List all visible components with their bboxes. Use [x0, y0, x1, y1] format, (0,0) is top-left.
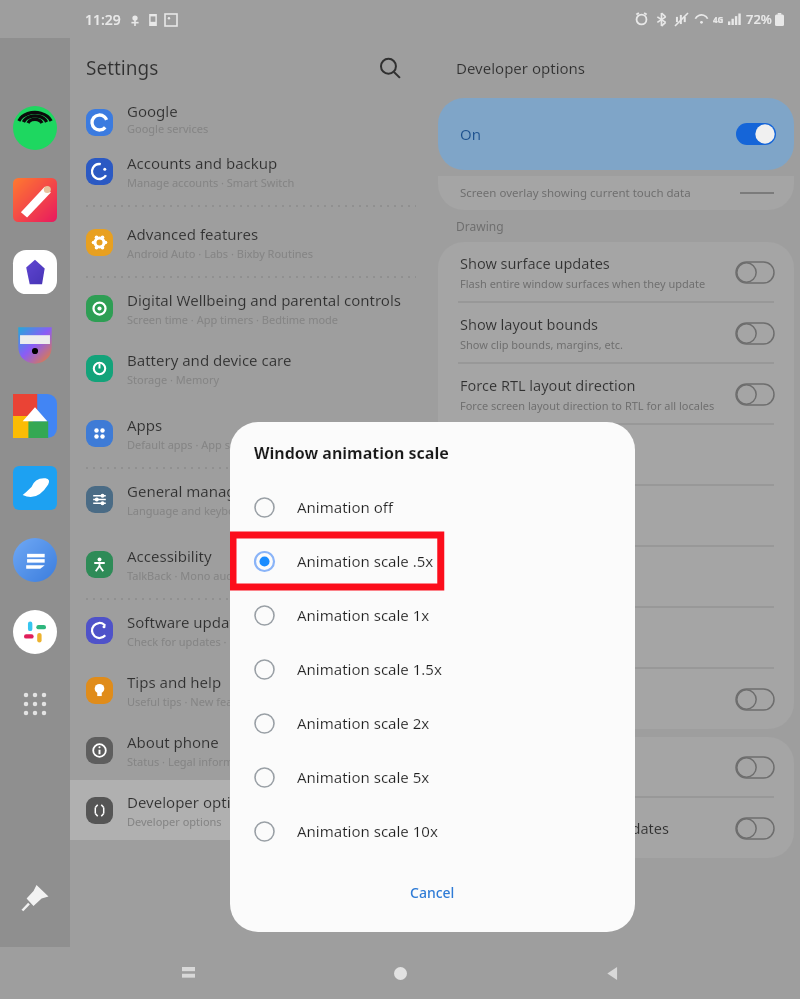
staticText: Window animation scale	[254, 442, 449, 464]
staticText: Show layout bounds	[460, 314, 599, 334]
button[interactable]: Animation scale 2x	[230, 696, 635, 750]
button[interactable]: On	[438, 98, 794, 170]
button[interactable]: Google Home	[7, 388, 63, 444]
button[interactable]: Animation scale 10x	[230, 804, 635, 858]
button[interactable]	[438, 608, 794, 668]
button[interactable]: Advanced features	[70, 207, 432, 277]
button[interactable]: App	[7, 244, 63, 300]
staticText: Force RTL layout direction	[460, 375, 636, 395]
staticText: Show hardware layers updates	[460, 818, 669, 838]
button[interactable]: General manager	[70, 469, 432, 529]
staticText: Language and keyboard	[127, 503, 253, 518]
button[interactable]: Apps	[7, 676, 63, 732]
button[interactable]: Home	[376, 949, 424, 997]
staticText: Settings	[86, 55, 159, 81]
staticText: Advanced features	[127, 224, 259, 244]
staticText: Animation scale 1.5x	[297, 659, 442, 679]
button[interactable]: Apps	[70, 398, 432, 468]
staticText: Manage accounts · Smart Switch	[127, 175, 295, 190]
staticText: Android Auto · Labs · Bixby Routines	[127, 246, 313, 261]
button[interactable]: Spotify	[7, 100, 63, 156]
staticText: 11:29	[85, 10, 121, 29]
staticText: Developer options	[127, 792, 257, 812]
button[interactable]: Digital Wellbeing and parental controls	[70, 278, 432, 338]
staticText: Useful tips · New featu	[127, 694, 244, 709]
button[interactable]: Show hardware layers updates	[438, 798, 794, 858]
button[interactable]: About phone	[70, 720, 432, 780]
staticText: Flash entire window surfaces when they u…	[460, 276, 706, 291]
staticText: Animation off	[297, 497, 394, 517]
staticText: Storage · Memory	[127, 372, 220, 387]
button[interactable]: Notes	[7, 172, 63, 228]
button[interactable]: Show surface updates	[438, 242, 794, 302]
staticText: Battery and device care	[127, 350, 292, 370]
button[interactable]: Animation off	[230, 480, 635, 534]
staticText: Default apps · App sett	[127, 437, 245, 452]
staticText: Screen time · App timers · Bedtime mode	[127, 312, 339, 327]
button[interactable]: Animation scale .5x	[230, 534, 635, 588]
staticText: Drawing	[456, 218, 504, 234]
staticText: Show surface updates	[460, 253, 610, 273]
staticText: Tips and help	[127, 672, 222, 692]
staticText: Check for updates · Up	[127, 634, 245, 649]
staticText: TalkBack · Mono audio	[127, 568, 243, 583]
staticText: Google	[127, 101, 178, 121]
button[interactable]: Twitter	[7, 460, 63, 516]
staticText: Show clip bounds, margins, etc.	[460, 337, 623, 352]
button[interactable]: ESPN	[7, 316, 63, 372]
button[interactable]: Force RTL layout direction	[438, 364, 794, 424]
button[interactable]	[438, 737, 794, 797]
staticText: Screen overlay showing current touch dat…	[460, 185, 691, 201]
button[interactable]	[438, 547, 794, 607]
staticText: Software update	[127, 612, 244, 632]
staticText: 72%	[746, 10, 772, 28]
button[interactable]: Accessibility	[70, 529, 432, 599]
button[interactable]: Realme	[7, 532, 63, 588]
staticText: Animation scale 10x	[297, 821, 438, 841]
button[interactable]: Slack	[7, 604, 63, 660]
button[interactable]: Animation scale 1x	[230, 588, 635, 642]
staticText: General manager	[127, 481, 251, 501]
staticText: Status · Legal informat	[127, 754, 244, 769]
staticText: Developer options	[127, 814, 222, 829]
button[interactable]: Tips and help	[70, 660, 432, 720]
staticText: Animation scale 1x	[297, 605, 430, 625]
button[interactable]: Animation scale 1.5x	[230, 642, 635, 696]
staticText: Apps	[127, 415, 163, 435]
button[interactable]: Developer options	[70, 780, 432, 840]
button[interactable]: Accounts and backup	[70, 136, 432, 206]
staticText: About phone	[127, 732, 219, 752]
button[interactable]: Show layout bounds	[438, 303, 794, 363]
staticText: Force screen layout direction to RTL for…	[460, 398, 715, 413]
staticText: Accounts and backup	[127, 153, 278, 173]
staticText: 4G	[713, 14, 724, 25]
staticText: Animation scale 5x	[297, 767, 430, 787]
staticText: Animation scale .5x	[297, 551, 434, 571]
staticText: Developer options	[456, 58, 586, 78]
button[interactable]: Search	[370, 48, 410, 88]
staticText: Accessibility	[127, 546, 212, 566]
button[interactable]: Back	[588, 949, 636, 997]
staticText: Google services	[127, 121, 209, 136]
staticText: Digital Wellbeing and parental controls	[127, 290, 401, 310]
button[interactable]: Recents	[164, 949, 212, 997]
button[interactable]	[438, 425, 794, 485]
staticText: On	[460, 124, 481, 144]
button[interactable]	[438, 486, 794, 546]
button[interactable]: Pin	[7, 869, 63, 925]
staticText: Cancel	[410, 883, 455, 902]
button[interactable]: Software update	[70, 600, 432, 660]
button[interactable]	[438, 669, 794, 729]
staticText: Animation scale 2x	[297, 713, 430, 733]
button[interactable]: Cancel	[392, 875, 473, 910]
button[interactable]: Animation scale 5x	[230, 750, 635, 804]
button[interactable]: Battery and device care	[70, 338, 432, 398]
